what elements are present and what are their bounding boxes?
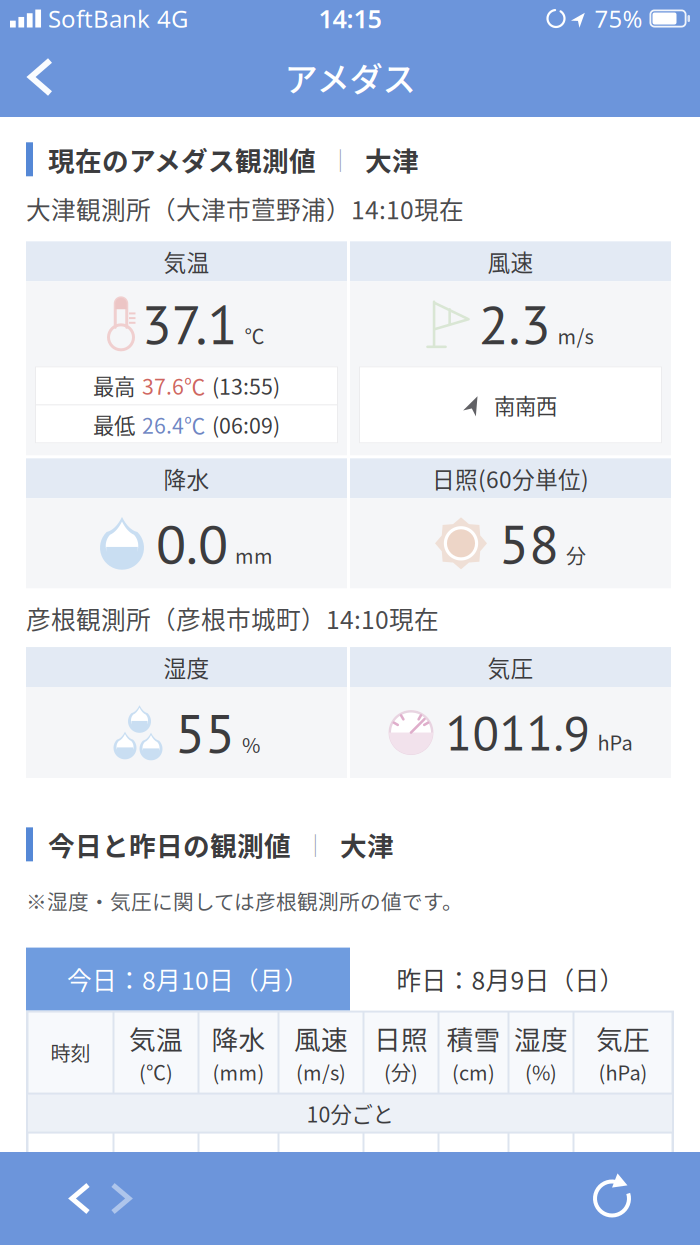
staticText: 26.4℃ [142,409,205,440]
staticText: 10分ごと [306,1098,393,1128]
staticText: ※湿度・気圧に関しては彦根観測所の値です。 [26,886,463,916]
staticText: (06:09) [212,409,280,440]
staticText: 今日と昨日の観測値 [48,825,291,864]
staticText: ｜ [329,143,352,176]
staticText: 大津観測所（大津市萱野浦）14:10現在 [26,191,464,226]
staticText: 2.3 [478,288,550,360]
button[interactable]: Back [0,38,50,115]
staticText: (%) [525,1057,557,1086]
staticText: 37.6℃ [142,370,205,401]
staticText: 最高 [93,370,135,401]
button[interactable]: Forward [88,1159,129,1238]
staticText: 分 [566,541,586,570]
staticText: 0.0 [156,507,228,579]
button[interactable]: 今日：8月10日（月） [26,948,350,1011]
staticText: (m/s) [296,1057,346,1086]
staticText: 気圧 [596,1019,650,1057]
staticText: 気温 [163,245,209,278]
staticText: m/s [557,321,593,350]
button[interactable]: Reload [594,1158,700,1238]
staticText: 58 [499,507,559,579]
staticText: mm [235,541,273,570]
staticText: hPa [597,727,632,756]
staticText: 気圧 [487,651,533,683]
staticText: ℃ [244,321,264,350]
staticText: (分) [384,1057,418,1086]
staticText: (℃) [139,1057,173,1086]
staticText: 37.1 [141,288,237,360]
staticText: 日照 [374,1019,428,1057]
staticText: 南南西 [494,389,557,420]
button[interactable]: Back [0,1159,88,1238]
staticText: 風速 [294,1019,348,1057]
staticText: (13:55) [212,370,280,401]
staticText: 降水 [211,1019,265,1057]
staticText: 14:15 [318,2,381,35]
staticText: 75% [594,3,642,34]
staticText: % [242,730,260,759]
button[interactable]: 昨日：8月9日（日） [350,948,671,1011]
staticText: 湿度 [163,651,209,683]
staticText: (hPa) [598,1057,647,1086]
staticText: 昨日：8月9日（日） [396,961,624,997]
staticText: 気温 [129,1019,183,1057]
staticText: 降水 [163,462,209,495]
staticText: 大津 [340,825,394,864]
staticText: 時刻 [50,1038,90,1067]
staticText: 風速 [487,245,533,278]
staticText: 1011.9 [445,701,590,764]
staticText: 現在のアメダス観測値 [48,140,316,179]
staticText: 湿度 [514,1019,568,1057]
staticText: アメダス [284,53,415,101]
staticText: 最低 [93,409,135,440]
staticText: (cm) [452,1057,495,1086]
staticText: 積雪 [446,1019,500,1057]
staticText: 今日：8月10日（月） [67,961,309,997]
staticText: 4G [157,3,188,34]
staticText: 彦根観測所（彦根市城町）14:10現在 [26,600,439,636]
staticText: (mm) [212,1057,264,1086]
staticText: SoftBank [48,3,150,34]
staticText: 大津 [365,140,419,179]
staticText: ｜ [304,828,327,861]
staticText: 55 [175,697,235,768]
staticText: 日照(60分単位) [432,462,589,495]
